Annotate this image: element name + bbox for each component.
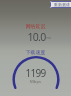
staticText: Mbps (0, 79, 71, 85)
staticText: 网络延迟 (0, 23, 71, 29)
staticText: ms (45, 35, 51, 41)
staticText: 10.0 (1, 30, 71, 44)
staticText: 1199 (0, 66, 71, 80)
staticText: 重新测速 (54, 2, 70, 7)
staticText: 下载速度 (0, 49, 71, 55)
button[interactable]: 重新测速 (50, 1, 71, 8)
